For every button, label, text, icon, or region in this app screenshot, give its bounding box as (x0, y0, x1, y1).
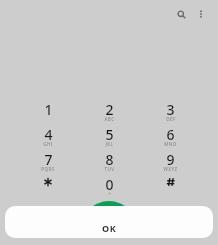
staticText: DEF (166, 116, 176, 122)
staticText: GHI (43, 141, 53, 147)
button[interactable]: 7 (17, 149, 79, 174)
button[interactable]: * (17, 174, 79, 199)
staticText: + (108, 191, 112, 197)
staticText: WXYZ (163, 166, 178, 172)
button[interactable]: 5 (79, 124, 140, 149)
staticText: OK (102, 222, 117, 234)
staticText: 8 (105, 150, 114, 169)
button[interactable]: Search (171, 4, 191, 24)
button[interactable]: # (140, 174, 201, 199)
staticText: 1 (44, 100, 53, 119)
staticText: JKL (105, 141, 114, 147)
staticText: PQRS (41, 166, 55, 172)
button[interactable]: 8 (79, 149, 140, 174)
staticText: MNO (164, 141, 177, 147)
button[interactable]: Call (81, 201, 137, 245)
staticText: 4 (44, 125, 53, 144)
staticText: 5 (105, 125, 114, 144)
button[interactable]: 4 (17, 124, 79, 149)
staticText: 6 (166, 125, 175, 144)
staticText: TUV (104, 166, 115, 172)
button[interactable]: 9 (140, 149, 201, 174)
staticText: ABC (104, 116, 115, 122)
staticText: 0 (105, 175, 114, 194)
staticText: 9 (166, 150, 175, 169)
staticText: 3 (166, 100, 175, 119)
button[interactable]: 0 (79, 174, 140, 199)
staticText: 7 (44, 150, 53, 169)
staticText: 2 (105, 100, 114, 119)
button[interactable]: 6 (140, 124, 201, 149)
button[interactable]: 2 (79, 99, 140, 124)
button[interactable]: 1 (17, 99, 79, 124)
button[interactable]: More options (191, 4, 211, 24)
button[interactable]: 3 (140, 99, 201, 124)
button[interactable]: OK (5, 206, 213, 238)
